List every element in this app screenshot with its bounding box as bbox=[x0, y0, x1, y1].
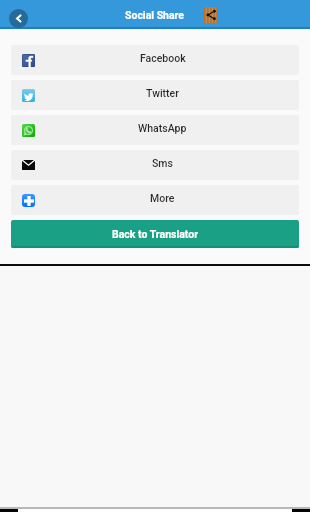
button[interactable]: Share bbox=[204, 7, 218, 23]
staticText: More bbox=[150, 192, 175, 204]
button[interactable]: WhatsApp bbox=[11, 115, 299, 145]
staticText: Twitter bbox=[146, 87, 179, 99]
button[interactable]: More bbox=[11, 185, 299, 215]
staticText: Back to Translator bbox=[112, 228, 199, 240]
button[interactable]: Facebook bbox=[11, 45, 299, 75]
staticText: Sms bbox=[152, 157, 173, 169]
staticText: Social Share bbox=[125, 9, 185, 21]
button[interactable]: Sms bbox=[11, 150, 299, 180]
button[interactable]: Back to Translator bbox=[11, 220, 299, 248]
staticText: Facebook bbox=[140, 52, 186, 64]
button[interactable]: Back bbox=[9, 9, 28, 28]
button[interactable]: Twitter bbox=[11, 80, 299, 110]
staticText: WhatsApp bbox=[138, 122, 187, 134]
